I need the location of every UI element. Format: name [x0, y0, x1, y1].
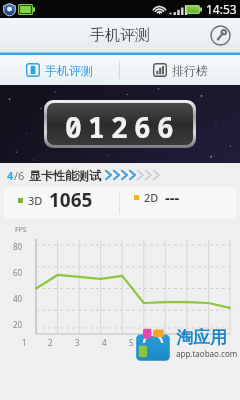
- staticText: 2D: [144, 190, 159, 205]
- staticText: 排行榜: [172, 63, 208, 78]
- staticText: 4: [7, 168, 14, 183]
- staticText: 1: [88, 108, 105, 140]
- staticText: 手机评测: [90, 26, 150, 45]
- button[interactable]: 3D: [18, 187, 119, 213]
- button[interactable]: 2D: [134, 187, 236, 207]
- staticText: 4: [102, 337, 107, 348]
- staticText: 6: [156, 337, 161, 348]
- staticText: 1: [22, 337, 27, 348]
- staticText: 6: [134, 108, 151, 140]
- staticText: 手机评测: [45, 63, 93, 78]
- staticText: 0: [65, 108, 82, 140]
- button[interactable]: Settings: [208, 23, 232, 47]
- staticText: 淘应用: [176, 327, 227, 348]
- staticText: app.taobao.com: [176, 348, 238, 359]
- staticText: ---: [165, 187, 180, 207]
- staticText: 5: [129, 337, 134, 348]
- staticText: 6: [157, 108, 174, 140]
- staticText: 80: [13, 241, 23, 252]
- staticText: 显卡性能测试: [29, 168, 101, 183]
- staticText: 2: [111, 108, 128, 140]
- staticText: 60: [13, 267, 23, 278]
- staticText: /6: [14, 168, 25, 183]
- staticText: 3: [75, 337, 80, 348]
- staticText: 2: [48, 337, 53, 348]
- staticText: 20: [13, 319, 23, 330]
- staticText: 3D: [28, 193, 43, 208]
- staticText: 14:53: [206, 1, 237, 17]
- staticText: 40: [13, 293, 23, 304]
- button[interactable]: 排行榜: [120, 55, 240, 85]
- button[interactable]: 手机评测: [0, 55, 119, 85]
- staticText: 1065: [49, 187, 93, 213]
- staticText: FPS: [15, 225, 27, 235]
